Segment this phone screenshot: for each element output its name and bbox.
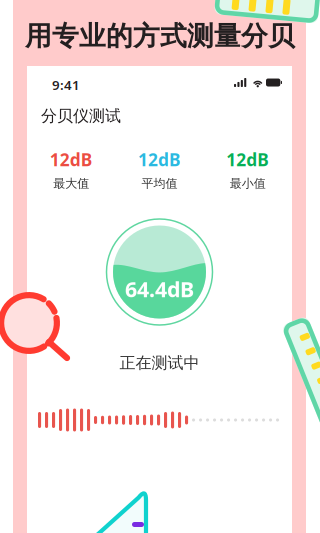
staticText: 分贝仪测试: [41, 106, 121, 126]
staticText: 最大值: [53, 176, 89, 191]
staticText: 12dB: [138, 148, 181, 171]
staticText: 12dB: [50, 148, 93, 171]
staticText: 平均值: [141, 176, 177, 191]
staticText: 64.4dB: [125, 275, 194, 303]
staticText: 正在测试中: [119, 353, 199, 373]
staticText: 9:41: [52, 76, 80, 94]
staticText: 最小值: [230, 176, 266, 191]
staticText: 12dB: [226, 148, 269, 171]
staticText: 用专业的方式测量分贝: [25, 20, 295, 52]
